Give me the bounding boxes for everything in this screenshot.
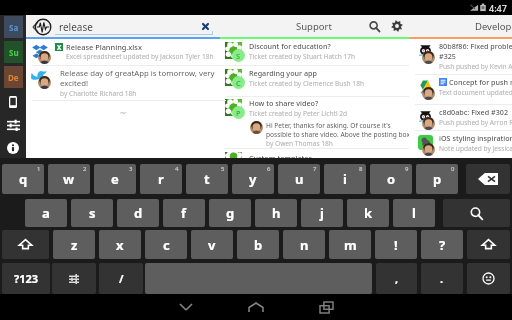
button[interactable]: l [393,199,435,227]
staticText: d [134,204,143,222]
button[interactable]: f [163,199,205,227]
button[interactable]: w [48,164,90,194]
staticText: Text document updated b [439,88,512,97]
button[interactable]: p [416,164,458,194]
staticText: a [42,204,50,222]
button[interactable]: v [191,230,233,259]
button[interactable]: Devices [2,91,24,113]
staticText: Regarding your app [249,68,317,78]
staticText: Ticket created by Peter Lichtl 2d [249,109,348,118]
button[interactable]: Emoji [467,263,510,294]
staticText: h [272,204,281,222]
button[interactable]: ? [421,230,463,259]
staticText: release [59,20,93,34]
staticText: Note updated by Jessica [439,144,512,153]
button[interactable]: i [324,164,366,194]
staticText: 2 [83,165,87,173]
button[interactable]: Search [364,16,384,36]
button[interactable]: P [219,96,409,148]
button[interactable]: e [94,164,136,194]
button[interactable]: ! [375,230,417,259]
staticText: i [343,170,347,188]
button[interactable]: m [329,230,371,259]
button[interactable]: q [2,164,44,194]
staticText: r [158,170,164,188]
button[interactable]: Backspace [466,164,510,194]
button[interactable]: Sa [4,16,23,38]
button[interactable]: Concept for push n [409,75,512,104]
staticText: t [204,170,210,188]
button[interactable]: Shift [467,230,510,259]
button[interactable]: Back [28,16,54,37]
staticText: possible to share video. Above the posti… [266,130,417,139]
staticText: X [57,43,62,51]
staticText: 1 [37,165,41,173]
staticText: Ticket created by Clemence Bush 18h [249,79,364,88]
button[interactable]: Su [4,41,23,63]
button[interactable]: k [347,199,389,227]
button[interactable]: d [117,199,159,227]
button[interactable]: Back [174,298,198,316]
button[interactable]: 80b8f86: Fixed proble [409,39,512,74]
button[interactable]: Custom templates [219,149,409,158]
staticText: S [236,51,241,61]
button[interactable]: Search [443,199,510,227]
staticText: C [236,78,241,88]
button[interactable]: Home [244,298,268,316]
button[interactable]: s [71,199,113,227]
button[interactable]: z [53,230,95,259]
staticText: ? [439,236,446,254]
button[interactable]: b [237,230,279,259]
button[interactable]: De [4,66,23,88]
staticText: v [208,236,216,254]
button[interactable]: Clear [198,19,212,33]
staticText: by Charlotte Richard 18h [60,89,137,98]
button[interactable]: a [25,199,67,227]
staticText: 7 [313,165,317,173]
button[interactable]: r [140,164,182,194]
button[interactable]: X [26,39,220,65]
button[interactable]: S [219,39,409,65]
button[interactable]: iOS styling inspiration [409,131,512,158]
button[interactable]: h [255,199,297,227]
button[interactable]: Settings [2,114,24,136]
staticText: u [295,170,304,188]
staticText: ?123 [14,271,39,286]
staticText: Push pushed by Arron Ri [439,118,512,127]
button[interactable]: ?123 [2,263,50,294]
button[interactable]: Release day of greatApp is tomorrow, ver… [26,66,220,100]
button[interactable]: c [145,230,187,259]
staticText: De [8,72,19,83]
staticText: P [236,108,241,118]
button[interactable]: g [209,199,251,227]
staticText: #325 [439,51,456,61]
staticText: How to share video? [249,98,319,108]
button[interactable]: Shift [2,230,49,259]
button[interactable]: c8d0abc: Fixed #302 [409,105,512,130]
button[interactable]: Change language [52,263,96,294]
button[interactable]: x [99,230,141,259]
staticText: w [63,170,75,188]
staticText: n [300,236,309,254]
button[interactable]: j [301,199,343,227]
button[interactable]: n [283,230,325,259]
staticText: . [440,271,444,286]
button[interactable]: , [376,263,417,294]
button[interactable]: Recents [314,298,338,316]
button[interactable]: . [421,263,463,294]
staticText: o [387,170,396,188]
button[interactable]: u [278,164,320,194]
button[interactable]: t [186,164,228,194]
button[interactable]: Settings [387,16,407,36]
button[interactable]: y [232,164,274,194]
staticText: Excel spreadsheet updated by Jackson Tyl… [66,52,214,61]
staticText: Discount for education? [249,41,331,51]
button[interactable]: Info [2,137,24,158]
button[interactable]: C [219,66,409,96]
staticText: 6 [267,165,271,173]
button[interactable]: o [370,164,412,194]
staticText: q [19,170,28,188]
staticText: Concept for push n [449,77,512,87]
button[interactable]: / [99,263,143,294]
